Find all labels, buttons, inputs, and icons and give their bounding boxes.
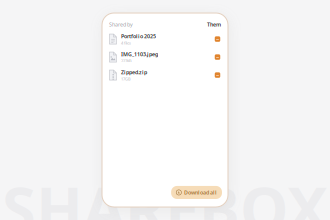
- button[interactable]: Download all: [171, 186, 222, 199]
- staticText: 17GB: [121, 76, 131, 81]
- button[interactable]: Download IMG_1103.jpeg: [214, 54, 221, 61]
- staticText: Shared by: [109, 21, 133, 28]
- button[interactable]: Download Zipped.zip: [214, 72, 221, 79]
- staticText: 4 files: [121, 40, 131, 45]
- staticText: 227KB: [121, 58, 132, 63]
- staticText: Them: [207, 21, 221, 28]
- staticText: Zipped.zip: [121, 69, 147, 76]
- staticText: Portfolio 2025: [121, 33, 156, 40]
- staticText: SHAREBOX: [2, 167, 328, 220]
- button[interactable]: Download Portfolio 2025: [214, 36, 221, 43]
- staticText: IMG_1103.jpeg: [121, 51, 158, 58]
- staticText: Download all: [184, 189, 217, 196]
